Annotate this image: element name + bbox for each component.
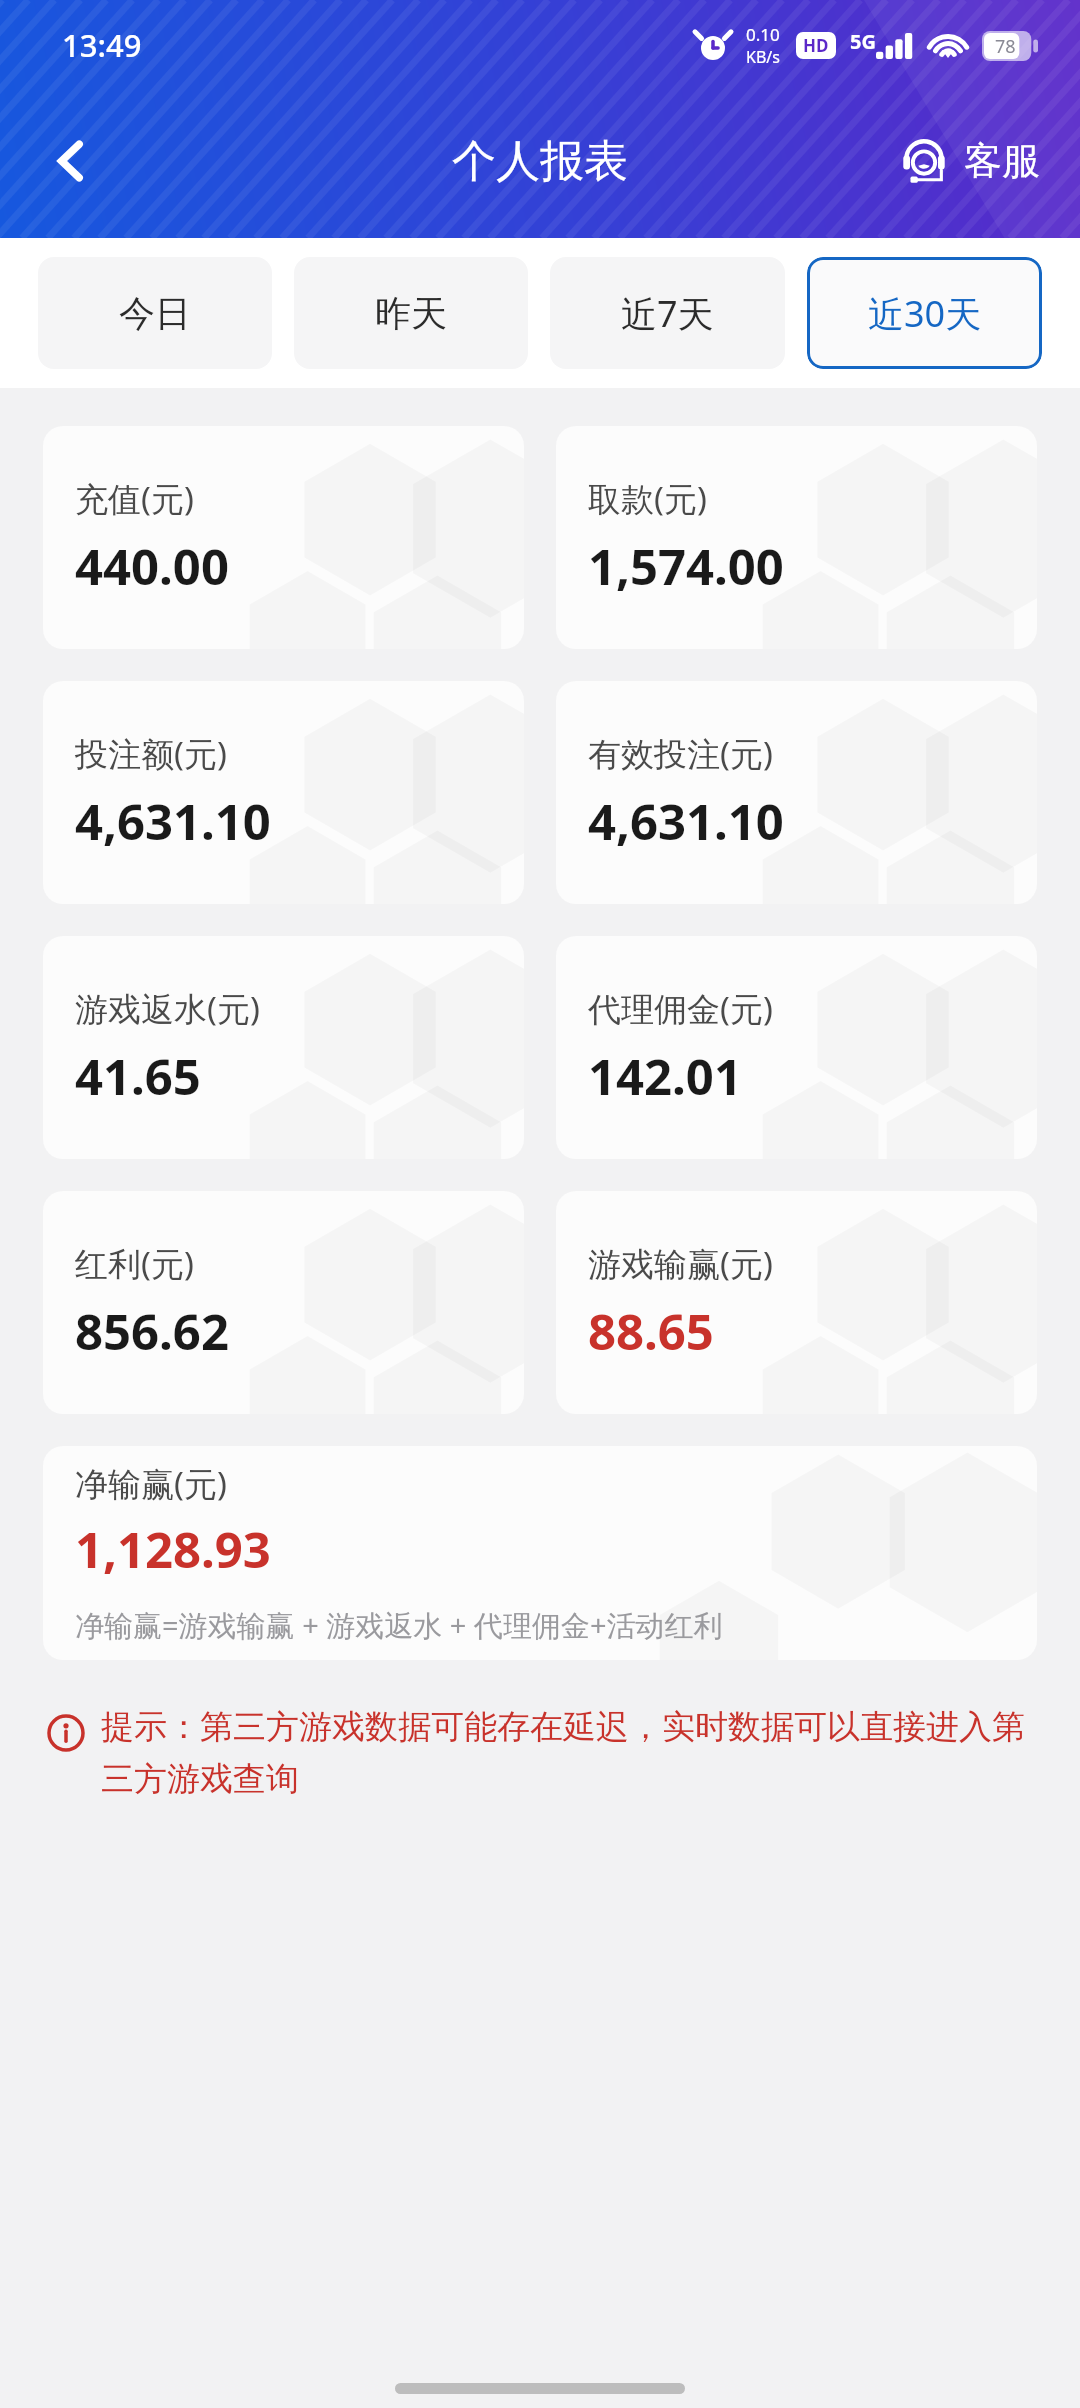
button[interactable]: 净输赢(元) <box>43 1446 1037 1660</box>
staticText: 游戏输赢(元) <box>588 1241 773 1286</box>
staticText: 4,631.10 <box>588 788 784 855</box>
staticText: 个人报表 <box>452 134 628 189</box>
staticText: 投注额(元) <box>75 731 227 776</box>
staticText: 142.01 <box>588 1043 742 1110</box>
staticText: 4,631.10 <box>75 788 271 855</box>
staticText: 有效投注(元) <box>588 731 773 776</box>
staticText: 充值(元) <box>75 476 194 521</box>
staticText: 今日 <box>119 291 191 336</box>
button[interactable]: 今日 <box>38 257 272 369</box>
button[interactable]: 有效投注(元) <box>556 681 1037 904</box>
staticText: 1,574.00 <box>588 533 784 600</box>
staticText: 近7天 <box>621 289 714 338</box>
staticText: 取款(元) <box>588 476 707 521</box>
button[interactable]: 近30天 <box>807 257 1042 369</box>
staticText: KB/s <box>746 46 780 68</box>
staticText: 净输赢(元) <box>75 1461 227 1506</box>
staticText: 5G <box>850 28 876 55</box>
button[interactable]: 昨天 <box>294 257 528 369</box>
button[interactable]: 游戏输赢(元) <box>556 1191 1037 1414</box>
button[interactable]: 取款(元) <box>556 426 1037 649</box>
staticText: 0.10 <box>746 23 780 46</box>
button[interactable]: 返回 <box>24 113 120 209</box>
button[interactable]: 充值(元) <box>43 426 524 649</box>
button[interactable]: 近7天 <box>550 257 785 369</box>
staticText: 856.62 <box>75 1298 229 1365</box>
staticText: 红利(元) <box>75 1241 194 1286</box>
button[interactable]: 红利(元) <box>43 1191 524 1414</box>
staticText: 昨天 <box>375 291 447 336</box>
staticText: 客服 <box>964 137 1040 185</box>
staticText: 代理佣金(元) <box>588 986 773 1031</box>
staticText: 41.65 <box>75 1043 201 1110</box>
button[interactable]: 客服 <box>892 127 1046 195</box>
button[interactable]: 代理佣金(元) <box>556 936 1037 1159</box>
staticText: 近30天 <box>868 289 982 338</box>
staticText: 440.00 <box>75 533 229 600</box>
staticText: HD <box>803 34 829 57</box>
staticText: 游戏返水(元) <box>75 986 260 1031</box>
staticText: 1,128.93 <box>75 1516 271 1583</box>
staticText: 提示：第三方游戏数据可能存在延迟，实时数据可以直接进入第三方游戏查询 <box>101 1706 1029 1800</box>
staticText: 78 <box>995 34 1016 59</box>
button[interactable]: 投注额(元) <box>43 681 524 904</box>
staticText: 13:49 <box>62 24 142 66</box>
button[interactable]: 游戏返水(元) <box>43 936 524 1159</box>
staticText: 88.65 <box>588 1298 714 1365</box>
staticText: 净输赢=游戏输赢 + 游戏返水 + 代理佣金+活动红利 <box>75 1605 723 1645</box>
